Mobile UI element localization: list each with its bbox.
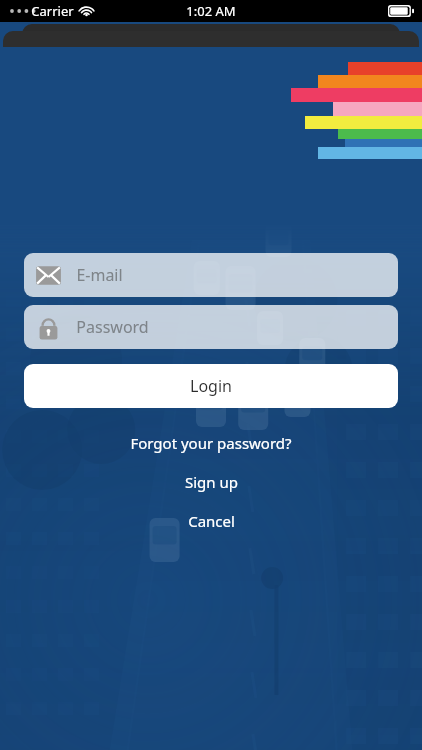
staticText: Login <box>190 375 232 397</box>
staticText: Forgot your password? <box>130 433 292 453</box>
button[interactable]: Password <box>24 305 398 349</box>
button[interactable]: Forgot your password? <box>120 430 302 456</box>
staticText: E-mail <box>76 264 123 286</box>
staticText: Cancel <box>188 511 235 531</box>
button[interactable]: E-mail <box>24 253 398 297</box>
button[interactable]: Login <box>24 364 398 408</box>
staticText: Carrier <box>31 2 74 20</box>
button[interactable]: Cancel <box>178 508 245 534</box>
staticText: 1:02 AM <box>186 2 236 20</box>
button[interactable]: Sign up <box>175 469 248 495</box>
staticText: Sign up <box>185 472 238 492</box>
staticText: Password <box>76 316 149 338</box>
